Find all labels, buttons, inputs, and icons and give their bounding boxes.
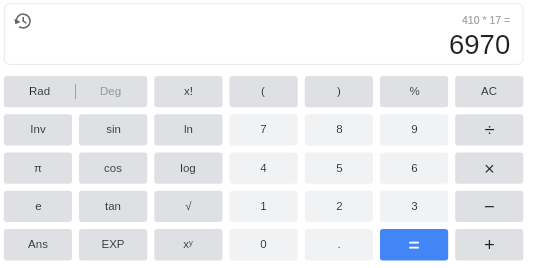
button[interactable]: 9 bbox=[380, 114, 448, 145]
button[interactable]: Rad bbox=[4, 76, 75, 107]
staticText: tan bbox=[105, 200, 121, 213]
button[interactable]: EXP bbox=[79, 229, 147, 260]
staticText: sin bbox=[106, 123, 121, 136]
button[interactable]: − bbox=[455, 191, 523, 222]
staticText: ( bbox=[261, 85, 265, 98]
staticText: 6970 bbox=[449, 29, 511, 60]
staticText: xʸ bbox=[183, 238, 193, 251]
button[interactable]: 0 bbox=[229, 229, 297, 260]
staticText: Rad bbox=[29, 85, 51, 98]
staticText: 8 bbox=[336, 123, 343, 136]
staticText: cos bbox=[104, 162, 122, 175]
button[interactable]: cos bbox=[79, 153, 147, 184]
staticText: 4 bbox=[260, 162, 267, 175]
button[interactable]: Inv bbox=[4, 114, 72, 145]
button[interactable]: 2 bbox=[305, 191, 373, 222]
button[interactable]: 4 bbox=[229, 153, 297, 184]
staticText: ÷ bbox=[484, 119, 495, 140]
button[interactable]: 7 bbox=[229, 114, 297, 145]
button[interactable]: History bbox=[11, 9, 36, 34]
button[interactable]: ÷ bbox=[455, 114, 523, 145]
button[interactable]: π bbox=[4, 153, 72, 184]
button[interactable]: % bbox=[380, 76, 448, 107]
staticText: 1 bbox=[260, 200, 267, 213]
button[interactable]: Deg bbox=[75, 76, 147, 107]
staticText: 3 bbox=[411, 200, 418, 213]
button[interactable]: Ans bbox=[4, 229, 72, 260]
staticText: − bbox=[484, 196, 495, 217]
staticText: Ans bbox=[28, 238, 48, 251]
staticText: π bbox=[34, 162, 42, 175]
staticText: √ bbox=[185, 200, 192, 213]
button[interactable]: ) bbox=[305, 76, 373, 107]
button[interactable]: 5 bbox=[305, 153, 373, 184]
button[interactable]: ln bbox=[154, 114, 222, 145]
staticText: Inv bbox=[30, 123, 46, 136]
staticText: = bbox=[408, 234, 420, 255]
staticText: + bbox=[484, 234, 495, 255]
staticText: 9 bbox=[411, 123, 418, 136]
staticText: ln bbox=[184, 123, 193, 136]
staticText: 6 bbox=[411, 162, 418, 175]
button[interactable]: log bbox=[154, 153, 222, 184]
button[interactable]: 8 bbox=[305, 114, 373, 145]
button[interactable]: ( bbox=[229, 76, 297, 107]
staticText: e bbox=[35, 200, 42, 213]
button[interactable]: 6 bbox=[380, 153, 448, 184]
staticText: x! bbox=[184, 85, 193, 98]
button[interactable]: + bbox=[455, 229, 523, 260]
staticText: ) bbox=[337, 85, 341, 98]
button[interactable]: 1 bbox=[229, 191, 297, 222]
button[interactable] bbox=[4, 76, 147, 107]
staticText: 410 * 17 = bbox=[462, 14, 511, 26]
staticText: log bbox=[180, 162, 196, 175]
button[interactable]: xʸ bbox=[154, 229, 222, 260]
button[interactable]: tan bbox=[79, 191, 147, 222]
staticText: 5 bbox=[336, 162, 343, 175]
staticText: 0 bbox=[260, 238, 267, 251]
staticText: 2 bbox=[336, 200, 343, 213]
button[interactable]: √ bbox=[154, 191, 222, 222]
button[interactable]: x! bbox=[154, 76, 222, 107]
staticText: % bbox=[409, 85, 420, 98]
button[interactable]: AC bbox=[455, 76, 523, 107]
button[interactable]: 3 bbox=[380, 191, 448, 222]
button[interactable]: sin bbox=[79, 114, 147, 145]
staticText: Deg bbox=[100, 85, 122, 98]
staticText: AC bbox=[481, 85, 497, 98]
staticText: × bbox=[484, 158, 495, 179]
button[interactable]: × bbox=[455, 153, 523, 184]
button[interactable]: e bbox=[4, 191, 72, 222]
staticText: EXP bbox=[101, 238, 125, 251]
button[interactable]: = bbox=[380, 229, 448, 260]
staticText: . bbox=[337, 238, 341, 251]
staticText: 7 bbox=[260, 123, 267, 136]
